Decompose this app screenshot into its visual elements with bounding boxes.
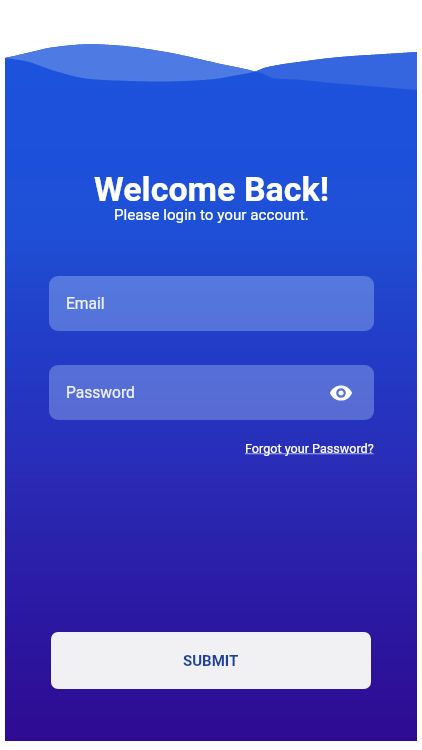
staticText: Please login to your account.: [114, 206, 309, 224]
staticText: SUBMIT: [183, 652, 239, 670]
staticText: Password: [66, 384, 135, 402]
staticText: Welcome Back!: [94, 169, 329, 209]
button[interactable]: SUBMIT: [51, 632, 371, 689]
button[interactable]: Email: [49, 276, 374, 331]
button[interactable]: Password: [49, 365, 374, 420]
staticText: Forgot your Password?: [245, 441, 374, 456]
button[interactable]: Forgot your Password?: [245, 441, 374, 456]
button[interactable]: Show password: [326, 378, 356, 408]
staticText: Email: [66, 295, 105, 313]
